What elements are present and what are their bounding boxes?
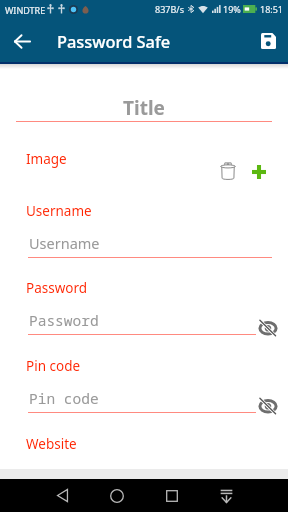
staticText: Title <box>0 95 288 121</box>
button[interactable]: Add image <box>247 160 271 184</box>
staticText: WINDTRE <box>5 4 46 16</box>
button[interactable]: Back <box>4 23 40 59</box>
staticText: 837B/s <box>155 3 184 15</box>
button[interactable]: Recent apps <box>156 479 188 512</box>
staticText: Pin code <box>29 388 99 408</box>
staticText: Password Safe <box>57 30 171 52</box>
staticText: Image <box>26 150 67 168</box>
button[interactable]: Toggle password visibility <box>259 320 277 336</box>
button[interactable]: Hide keyboard <box>210 479 242 512</box>
staticText: Pin code <box>26 357 81 375</box>
button[interactable]: Delete image <box>216 159 240 183</box>
staticText: Username <box>29 233 100 253</box>
staticText: Website <box>26 435 77 453</box>
staticText: 19% <box>223 3 241 15</box>
staticText: 18:51 <box>260 3 284 15</box>
staticText: Password <box>26 279 88 297</box>
button[interactable]: Back <box>46 479 78 512</box>
button[interactable]: Home <box>101 479 133 512</box>
staticText: Password <box>29 310 99 330</box>
button[interactable]: Toggle pin visibility <box>259 398 277 414</box>
button[interactable]: Save <box>250 23 286 59</box>
staticText: Username <box>26 202 92 220</box>
